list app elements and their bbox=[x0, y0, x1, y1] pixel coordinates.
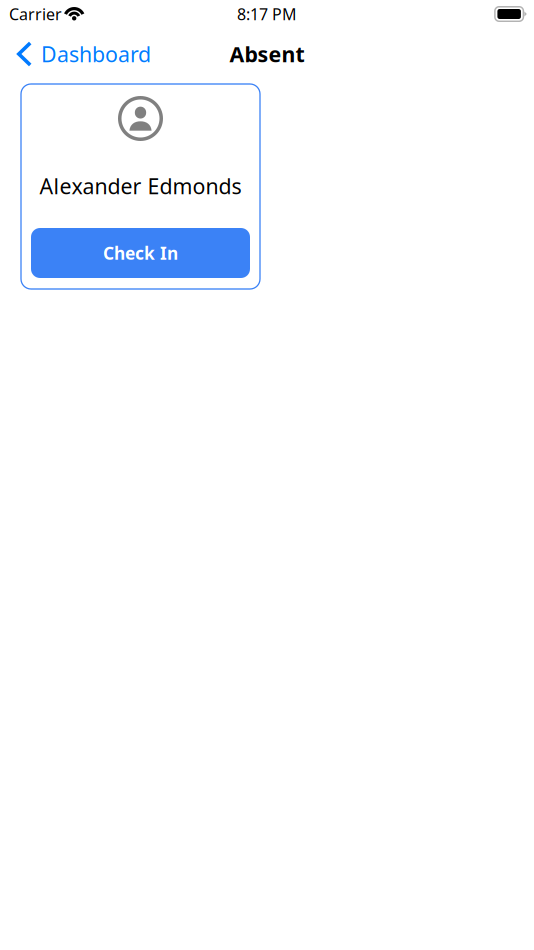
button[interactable]: Dashboard bbox=[0, 30, 161, 74]
staticText: 8:17 PM bbox=[237, 3, 297, 25]
staticText: Dashboard bbox=[41, 40, 151, 68]
staticText: Alexander Edmonds bbox=[39, 172, 241, 200]
staticText: Carrier bbox=[9, 3, 62, 25]
staticText: Check In bbox=[103, 241, 178, 264]
button[interactable]: Check In bbox=[31, 228, 250, 278]
staticText: Absent bbox=[229, 40, 304, 68]
